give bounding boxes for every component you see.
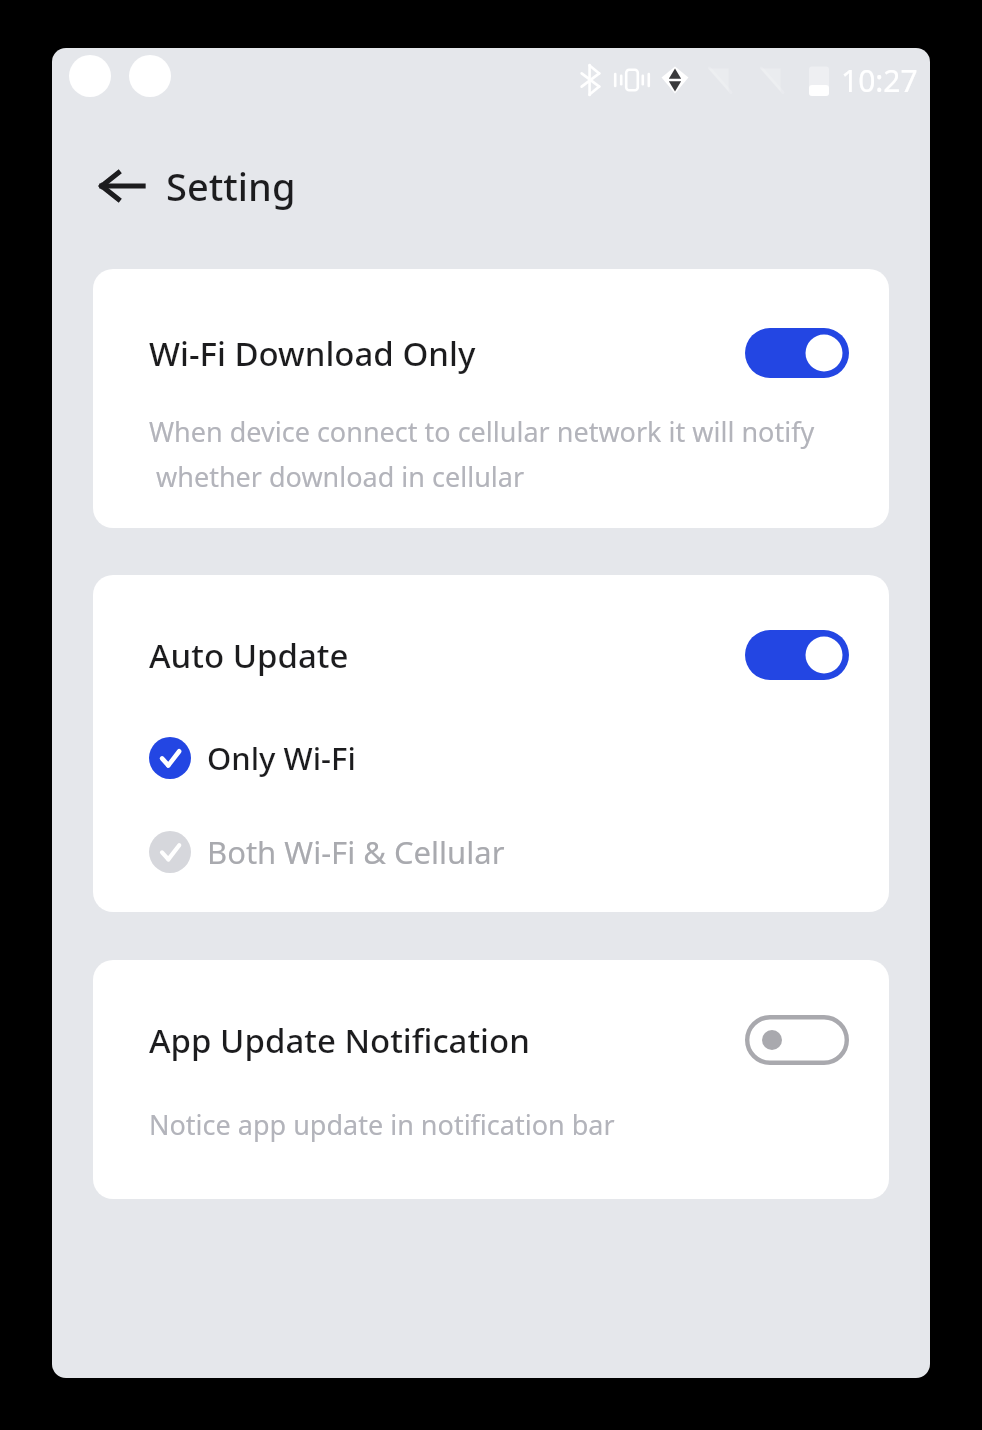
staticText: Setting bbox=[166, 160, 296, 212]
button[interactable]: Back bbox=[92, 156, 152, 216]
staticText: Only Wi-Fi bbox=[207, 737, 356, 779]
staticText: Notice app update in notification bar bbox=[149, 1106, 615, 1143]
staticText: App Update Notification bbox=[149, 1018, 745, 1063]
button[interactable]: Toggle on bbox=[745, 328, 849, 378]
button[interactable]: Auto Update bbox=[93, 625, 889, 685]
button[interactable]: Toggle off bbox=[745, 1015, 849, 1065]
staticText: 10:27 bbox=[841, 60, 918, 101]
button[interactable]: Only Wi-Fi bbox=[93, 730, 889, 786]
staticText: whether download in cellular bbox=[149, 458, 525, 495]
button[interactable]: Toggle on bbox=[745, 630, 849, 680]
button[interactable]: Both Wi-Fi & Cellular bbox=[93, 824, 889, 880]
staticText: Auto Update bbox=[149, 633, 745, 678]
staticText: Wi-Fi Download Only bbox=[149, 331, 745, 376]
button[interactable]: Wi-Fi Download Only bbox=[93, 323, 889, 383]
staticText: Both Wi-Fi & Cellular bbox=[207, 831, 505, 873]
button[interactable]: App Update Notification bbox=[93, 1010, 889, 1070]
staticText: When device connect to cellular network … bbox=[149, 413, 815, 450]
